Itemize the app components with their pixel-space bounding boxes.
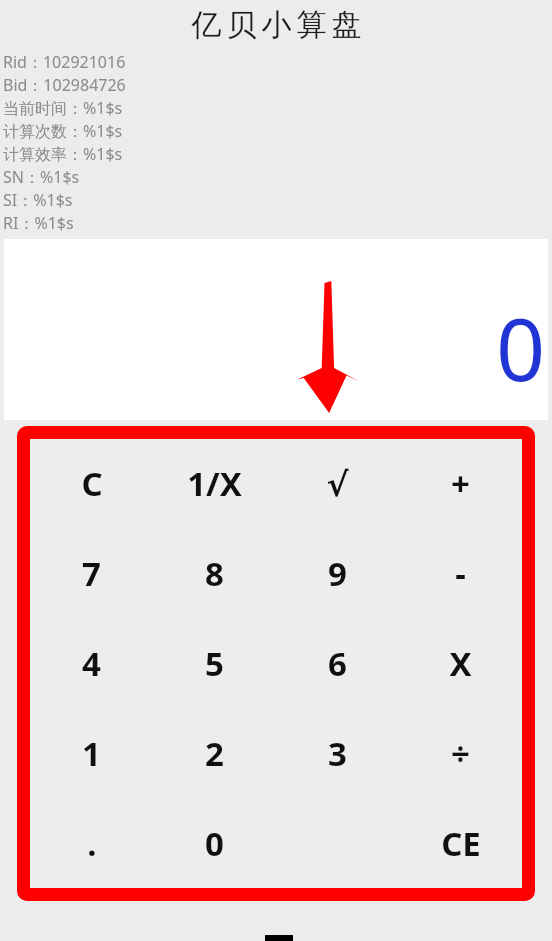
button[interactable]: 7 (30, 528, 153, 618)
button[interactable]: 3 (276, 708, 399, 798)
staticText: CE (441, 821, 481, 866)
button[interactable]: + (399, 439, 522, 528)
button[interactable]: 1/X (153, 439, 276, 528)
staticText: 6 (328, 641, 347, 686)
staticText: X (449, 641, 472, 686)
staticText: √ (326, 465, 349, 503)
staticText: Bid：102984726 (3, 74, 126, 96)
staticText: SN：%1$s (3, 166, 80, 188)
button[interactable]: 9 (276, 528, 399, 618)
staticText: 计算次数：%1$s (3, 120, 123, 142)
button[interactable]: 1 (30, 708, 153, 798)
button[interactable]: . (30, 798, 153, 888)
staticText: + (451, 461, 470, 506)
button[interactable]: √ (276, 439, 399, 528)
button[interactable]: CE (399, 798, 522, 888)
staticText: 4 (82, 641, 101, 686)
button[interactable]: C (30, 439, 153, 528)
button[interactable]: 6 (276, 618, 399, 708)
staticText: SI：%1$s (3, 189, 73, 211)
staticText: 1 (82, 731, 101, 776)
staticText: 亿贝小算盘 (189, 6, 364, 44)
staticText: . (87, 821, 97, 866)
staticText: 1/X (187, 461, 242, 506)
staticText: 3 (328, 731, 347, 776)
staticText: 9 (328, 551, 347, 596)
staticText: - (455, 551, 466, 596)
button[interactable]: - (399, 528, 522, 618)
button[interactable]: 0 (153, 798, 276, 888)
button[interactable]: 5 (153, 618, 276, 708)
staticText: Rid：102921016 (3, 51, 126, 73)
button[interactable]: 8 (153, 528, 276, 618)
staticText: ÷ (451, 731, 470, 776)
staticText: 计算效率：%1$s (3, 143, 123, 165)
button[interactable]: X (399, 618, 522, 708)
staticText: 8 (205, 551, 224, 596)
staticText: 7 (82, 551, 101, 596)
staticText: 2 (205, 731, 224, 776)
button[interactable]: ÷ (399, 708, 522, 798)
button[interactable]: 4 (30, 618, 153, 708)
button[interactable]: 2 (153, 708, 276, 798)
staticText: C (81, 461, 103, 506)
staticText: 当前时间：%1$s (3, 97, 123, 119)
staticText: 0 (496, 289, 546, 406)
staticText: 0 (205, 821, 224, 866)
staticText: 5 (205, 641, 224, 686)
staticText: RI：%1$s (3, 212, 74, 234)
